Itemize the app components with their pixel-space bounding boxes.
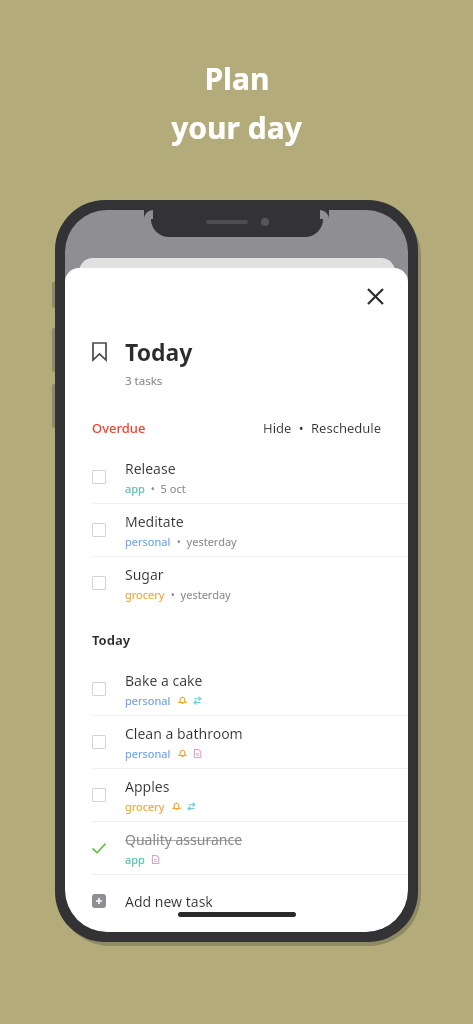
staticText: Today xyxy=(125,336,193,367)
staticText: Clean a bathroom xyxy=(125,724,243,743)
button[interactable]: Overdue xyxy=(92,419,146,437)
staticText: Plan xyxy=(204,58,270,99)
staticText: personal xyxy=(125,534,171,549)
staticText: Reschedule xyxy=(311,419,381,437)
staticText: • yesterday xyxy=(171,534,237,549)
button[interactable]: Clean a bathroom xyxy=(65,716,408,769)
staticText: Hide xyxy=(263,419,292,437)
staticText: • 5 oct xyxy=(145,481,186,496)
staticText: 3 tasks xyxy=(125,373,163,389)
button[interactable]: Bake a cake xyxy=(65,663,408,716)
button[interactable]: Release xyxy=(65,451,408,504)
staticText: Apples xyxy=(125,777,170,796)
staticText: Add new task xyxy=(125,892,213,911)
staticText: Bake a cake xyxy=(125,671,203,690)
staticText: • yesterday xyxy=(165,587,231,602)
staticText: Quality assurance xyxy=(125,830,243,849)
staticText: Today xyxy=(92,631,131,649)
button[interactable]: Apples xyxy=(65,769,408,822)
button[interactable]: Close xyxy=(358,279,392,313)
button[interactable]: Reschedule xyxy=(311,419,381,437)
staticText: grocery xyxy=(125,799,165,814)
staticText: Release xyxy=(125,459,176,478)
button[interactable]: Add new task xyxy=(65,875,408,927)
button[interactable]: Hide xyxy=(263,419,292,437)
staticText: app xyxy=(125,852,145,867)
staticText: Sugar xyxy=(125,565,164,584)
button[interactable]: Sugar xyxy=(65,557,408,609)
button[interactable]: Meditate xyxy=(65,504,408,557)
staticText: personal xyxy=(125,693,171,708)
staticText: grocery xyxy=(125,587,165,602)
staticText: Meditate xyxy=(125,512,184,531)
staticText: • xyxy=(292,419,311,437)
staticText: your day xyxy=(171,107,302,148)
button[interactable]: Quality assurance xyxy=(65,822,408,875)
staticText: personal xyxy=(125,746,171,761)
staticText: Overdue xyxy=(92,419,146,437)
staticText: app xyxy=(125,481,145,496)
